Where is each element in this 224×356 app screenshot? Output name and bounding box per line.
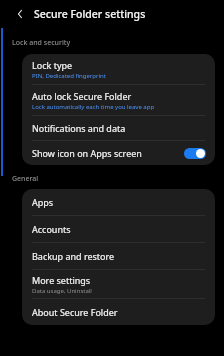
button[interactable]: Auto lock Secure Folder <box>22 85 215 115</box>
staticText: Show icon on Apps screen <box>32 147 142 159</box>
staticText: About Secure Folder <box>32 306 118 318</box>
staticText: Lock and security <box>12 38 71 48</box>
button[interactable]: Notifications and data <box>22 116 215 140</box>
button[interactable]: Apps <box>22 189 215 215</box>
staticText: PIN, Dedicated fingerprint <box>32 72 106 80</box>
staticText: Lock type <box>32 59 73 71</box>
button[interactable]: More settings <box>22 270 215 298</box>
button[interactable]: Show icon on Apps screen <box>22 141 215 165</box>
staticText: Auto lock Secure Folder <box>32 90 132 102</box>
staticText: Notifications and data <box>32 122 126 134</box>
staticText: Accounts <box>32 223 71 235</box>
button[interactable]: Accounts <box>22 216 215 242</box>
staticText: Lock automatically each time you leave a… <box>32 103 155 111</box>
staticText: Backup and restore <box>32 250 115 262</box>
staticText: More settings <box>32 274 91 286</box>
staticText: General <box>12 174 39 184</box>
staticText: Data usage, Uninstall <box>32 287 92 295</box>
button[interactable]: Back <box>12 6 28 22</box>
button[interactable]: About Secure Folder <box>22 299 215 325</box>
button[interactable]: Backup and restore <box>22 243 215 269</box>
button[interactable]: Show icon on Apps screen toggle <box>183 146 207 160</box>
staticText: Secure Folder settings <box>34 7 146 21</box>
button[interactable]: Lock type <box>22 54 215 84</box>
staticText: Apps <box>32 196 54 208</box>
